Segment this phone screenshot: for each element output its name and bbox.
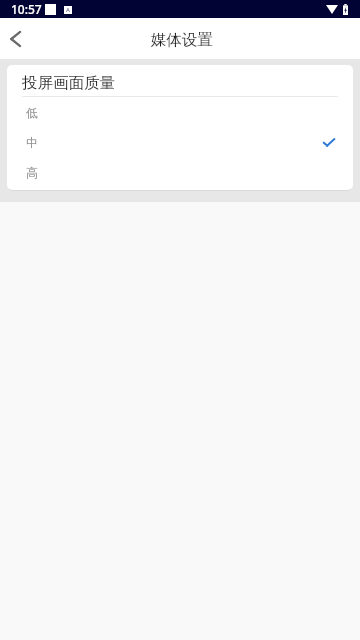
staticText: 10:57: [11, 1, 42, 17]
staticText: 中: [26, 135, 38, 150]
staticText: 投屏画面质量: [22, 73, 115, 93]
button[interactable]: Back: [0, 24, 30, 54]
staticText: 低: [26, 105, 38, 120]
staticText: 高: [26, 165, 38, 180]
button[interactable]: 高: [7, 157, 353, 187]
staticText: A: [66, 6, 70, 14]
staticText: 媒体设置: [151, 30, 213, 50]
button[interactable]: 低: [7, 97, 353, 127]
button[interactable]: 中: [7, 127, 353, 157]
